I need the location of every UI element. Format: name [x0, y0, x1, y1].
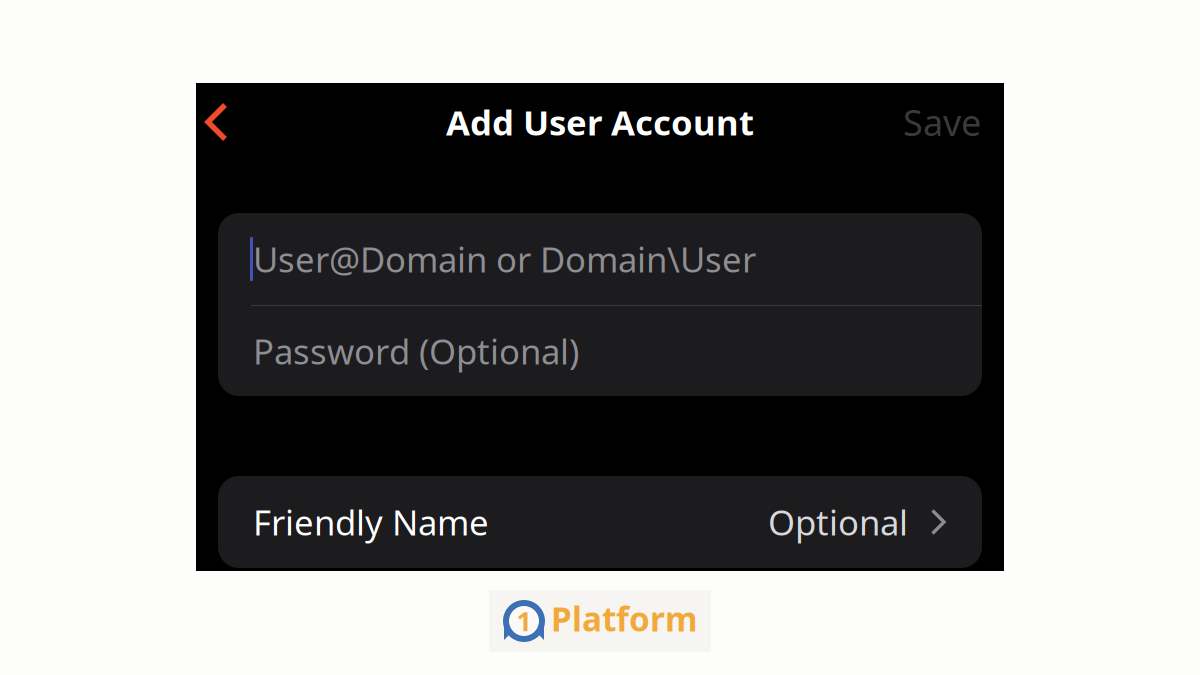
staticText: 1 [516, 603, 531, 639]
staticText: Platform [551, 596, 698, 641]
staticText: Add User Account [446, 99, 754, 145]
button[interactable]: Save [889, 86, 1004, 158]
button[interactable]: Password (Optional) [218, 306, 982, 396]
button[interactable]: Back [196, 92, 245, 152]
staticText: Save [903, 98, 981, 146]
staticText: Optional [768, 499, 908, 545]
button[interactable]: Friendly Name [218, 476, 982, 568]
button[interactable]: User@Domain or Domain\User [218, 213, 982, 305]
staticText: User@Domain or Domain\User [253, 236, 756, 282]
staticText: Friendly Name [253, 499, 489, 545]
staticText: Password (Optional) [253, 328, 579, 374]
